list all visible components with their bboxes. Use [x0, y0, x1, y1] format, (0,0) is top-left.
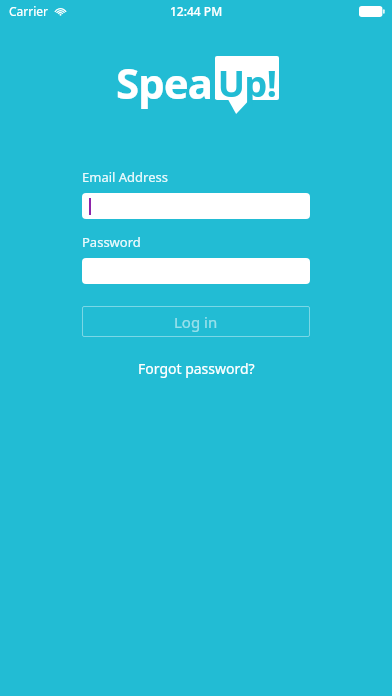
staticText: Speak: [116, 54, 237, 111]
button[interactable]: [82, 193, 310, 219]
button[interactable]: Forgot password?: [130, 355, 263, 382]
button[interactable]: [82, 258, 310, 284]
staticText: Password: [82, 233, 141, 251]
staticText: Log in: [174, 312, 218, 332]
staticText: Carrier: [9, 3, 49, 19]
staticText: Email Address: [82, 168, 168, 186]
button[interactable]: Log in: [82, 306, 310, 337]
staticText: 12:44 PM: [170, 3, 223, 19]
staticText: Up!: [215, 59, 279, 108]
